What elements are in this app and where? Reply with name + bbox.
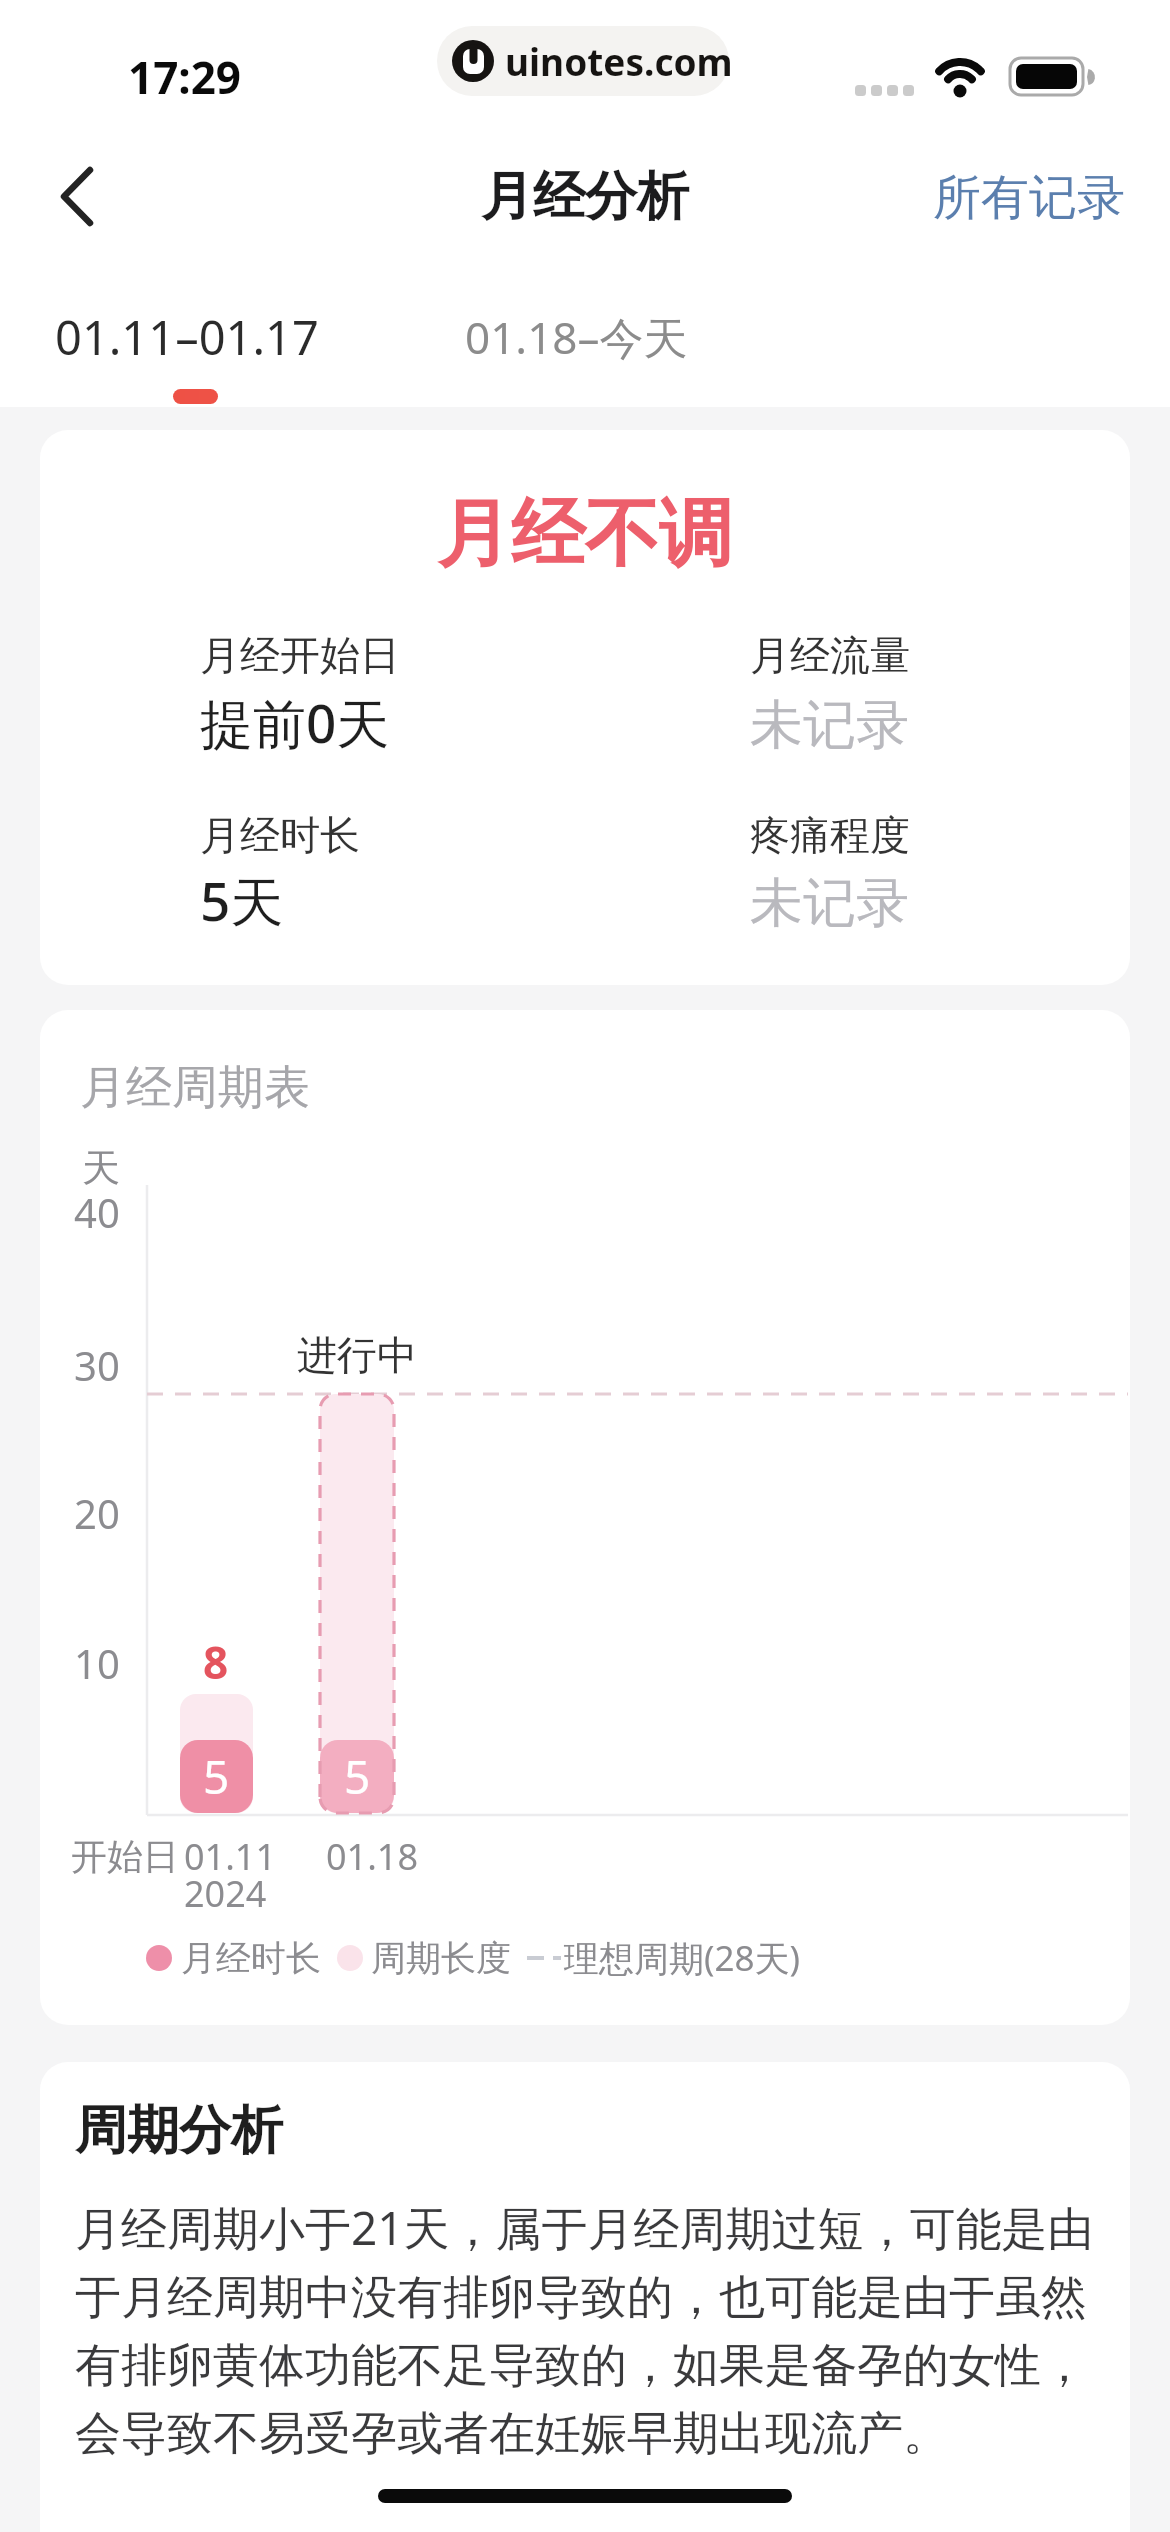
staticText: 01.11–01.17: [55, 305, 319, 369]
staticText: 疼痛程度: [750, 810, 910, 860]
button[interactable]: 01.11–01.17: [0, 0, 264, 90]
staticText: uinotes.com: [505, 36, 733, 86]
staticText: 周期分析: [75, 2098, 283, 2164]
staticText: 40: [74, 1185, 120, 1239]
button[interactable]: 所有记录: [0, 0, 400, 90]
staticText: 未记录: [750, 870, 909, 937]
staticText: 天: [82, 1144, 120, 1192]
staticText: 月经周期小于21天，属于月经周期过短，可能是由 于月经周期中没有排卵导致的，也可…: [75, 2196, 1094, 2462]
staticText: 月经分析: [481, 164, 689, 230]
staticText: 未记录: [750, 692, 909, 759]
staticText: 月经时长: [200, 810, 360, 860]
staticText: 01.11: [184, 1832, 277, 1881]
staticText: 所有记录: [933, 168, 1125, 228]
button[interactable]: 01.18–今天: [0, 0, 223, 90]
button[interactable]: [45, 155, 125, 240]
staticText: 01.18–今天: [465, 307, 688, 367]
staticText: 理想周期(28天): [564, 1934, 801, 1982]
staticText: 17:29: [128, 47, 242, 107]
staticText: 30: [74, 1338, 120, 1392]
staticText: 提前0天: [200, 686, 390, 758]
staticText: 开始日: [71, 1834, 179, 1879]
staticText: 进行中: [297, 1330, 417, 1380]
staticText: 月经周期表: [80, 1059, 310, 1117]
staticText: 01.18: [326, 1832, 419, 1881]
staticText: 5: [203, 1745, 230, 1808]
staticText: 月经流量: [750, 630, 910, 680]
staticText: 20: [74, 1486, 120, 1540]
staticText: 月经开始日: [200, 630, 400, 680]
staticText: 月经不调: [437, 488, 733, 578]
staticText: 月经时长: [181, 1936, 321, 1980]
staticText: 10: [74, 1636, 120, 1690]
staticText: 周期长度: [371, 1936, 511, 1980]
staticText: 8: [203, 1632, 229, 1692]
staticText: 2024: [184, 1869, 267, 1918]
staticText: 5: [344, 1745, 371, 1808]
staticText: 5天: [200, 864, 284, 936]
